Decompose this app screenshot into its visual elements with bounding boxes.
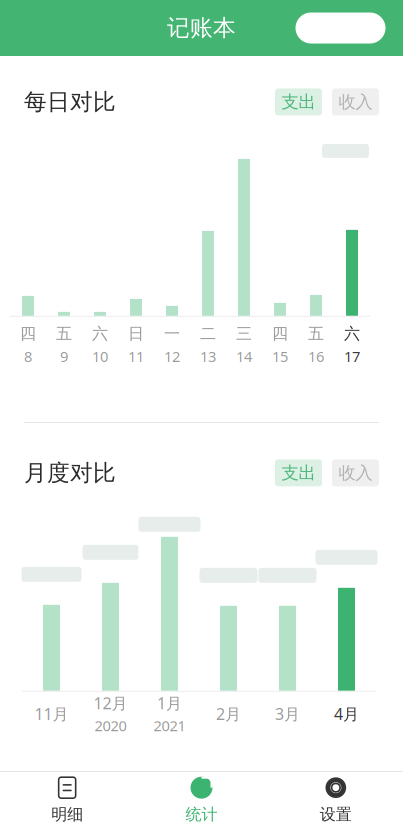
staticText: 五 xyxy=(56,324,72,343)
staticText: 支出 xyxy=(281,462,315,483)
button[interactable]: 支出 xyxy=(275,88,322,115)
staticText: 16 xyxy=(308,346,324,366)
staticText: 15 xyxy=(272,346,288,366)
staticText: 月度对比 xyxy=(24,459,116,487)
staticText: 五 xyxy=(308,324,324,343)
staticText: 11 xyxy=(128,346,144,366)
staticText: 4月 xyxy=(334,703,359,724)
staticText: 17 xyxy=(344,346,360,366)
staticText: 14 xyxy=(236,346,252,366)
staticText: 六 xyxy=(344,324,360,343)
button[interactable]: 支出 xyxy=(275,459,322,486)
button[interactable]: 明细 xyxy=(0,772,134,828)
button[interactable]: 设置 xyxy=(269,772,403,828)
button[interactable]: 收入 xyxy=(332,88,379,115)
staticText: 四 xyxy=(272,324,288,343)
staticText: 二 xyxy=(200,324,216,343)
staticText: 明细 xyxy=(51,805,83,824)
staticText: 10 xyxy=(92,346,108,366)
button[interactable]: 统计 xyxy=(134,772,269,828)
staticText: 8 xyxy=(24,346,32,366)
staticText: 2021 xyxy=(153,716,185,735)
staticText: 12月 xyxy=(93,692,127,714)
staticText: 设置 xyxy=(320,805,352,824)
button[interactable]: Close xyxy=(341,13,385,43)
staticText: 1月 xyxy=(157,692,182,714)
staticText: 收入 xyxy=(338,91,372,113)
staticText: 12 xyxy=(164,346,180,366)
staticText: 每日对比 xyxy=(24,88,116,116)
staticText: 2020 xyxy=(94,716,126,735)
staticText: 支出 xyxy=(281,91,315,113)
staticText: 日 xyxy=(128,324,144,343)
button[interactable]: More xyxy=(296,13,340,43)
staticText: 六 xyxy=(92,324,108,343)
staticText: 收入 xyxy=(338,462,372,483)
button[interactable]: 收入 xyxy=(332,459,379,486)
staticText: 四 xyxy=(20,324,36,343)
staticText: 2月 xyxy=(216,703,241,724)
staticText: 统计 xyxy=(185,805,217,824)
staticText: 11月 xyxy=(34,703,68,724)
staticText: 记账本 xyxy=(167,14,236,42)
staticText: 一 xyxy=(164,324,180,343)
staticText: 3月 xyxy=(275,703,300,724)
staticText: 三 xyxy=(236,324,252,343)
staticText: 9 xyxy=(60,346,68,366)
staticText: 13 xyxy=(200,346,216,366)
